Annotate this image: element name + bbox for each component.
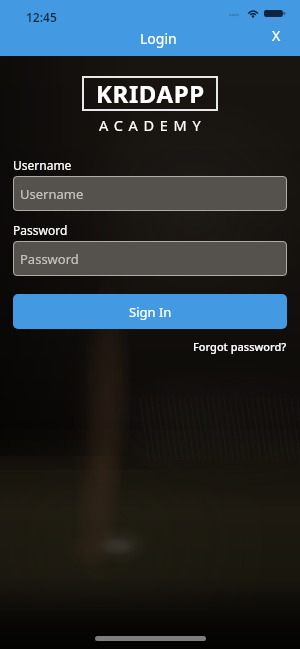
button[interactable]: Forgot password?: [193, 339, 287, 354]
staticText: Password: [20, 250, 79, 268]
staticText: Password: [13, 222, 68, 238]
staticText: Login: [140, 29, 177, 48]
button[interactable]: Close: [260, 24, 300, 49]
staticText: Username: [20, 185, 84, 203]
staticText: ACADEMY: [99, 115, 207, 135]
button[interactable]: Password: [13, 241, 287, 276]
staticText: Forgot password?: [193, 339, 287, 354]
button[interactable]: Sign In: [13, 294, 287, 329]
staticText: 12:45: [26, 9, 57, 25]
staticText: KRIDAPP: [96, 77, 205, 110]
staticText: Username: [13, 157, 72, 173]
button[interactable]: Username: [13, 176, 287, 211]
staticText: X: [272, 26, 281, 45]
staticText: Sign In: [129, 303, 172, 321]
